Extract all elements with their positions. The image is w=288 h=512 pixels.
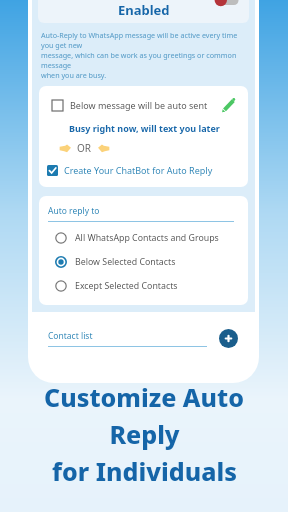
button[interactable]: Enabled xyxy=(38,0,249,23)
staticText: Reply xyxy=(109,417,180,451)
button[interactable]: Add contact xyxy=(219,329,238,348)
button[interactable]: Below message will be auto sent xyxy=(52,97,237,113)
button[interactable]: Enable auto reply xyxy=(213,0,239,7)
staticText: Except Selected Contacts xyxy=(75,280,178,292)
button[interactable]: Edit message xyxy=(221,97,237,113)
staticText: Below Selected Contacts xyxy=(75,256,176,268)
button[interactable]: Except Selected Contacts xyxy=(55,280,238,292)
staticText: Below message will be auto sent xyxy=(70,99,208,111)
button[interactable]: All WhatsApp Contacts and Groups xyxy=(55,232,238,244)
staticText: Contact list xyxy=(48,330,93,342)
staticText: Enabled xyxy=(118,1,170,19)
staticText: All WhatsApp Contacts and Groups xyxy=(75,232,219,244)
staticText: message, which can be work as you greeti… xyxy=(41,50,246,70)
staticText: for Individuals xyxy=(52,454,237,488)
staticText: when you are busy. xyxy=(41,70,107,80)
staticText: Auto-Reply to WhatsApp message will be a… xyxy=(41,30,246,50)
button[interactable]: Create Your ChatBot for Auto Reply xyxy=(47,164,237,176)
staticText: Create Your ChatBot for Auto Reply xyxy=(64,164,213,176)
staticText: Busy right now, will text you later xyxy=(69,122,234,134)
staticText: OR xyxy=(77,141,92,155)
staticText: Auto reply to xyxy=(48,205,100,217)
staticText: Customize Auto xyxy=(44,380,244,414)
button[interactable]: Below Selected Contacts xyxy=(55,256,238,268)
